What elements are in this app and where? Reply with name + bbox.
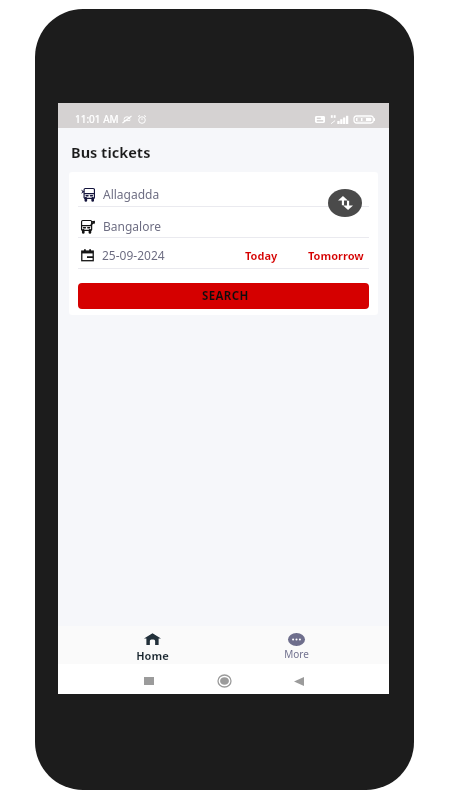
- button[interactable]: Today: [244, 248, 279, 263]
- staticText: Tomorrow: [308, 248, 364, 263]
- button[interactable]: Swap source and destination: [328, 189, 362, 217]
- staticText: Home: [136, 648, 169, 663]
- button[interactable]: Home: [213, 670, 235, 692]
- staticText: Bangalore: [103, 218, 161, 234]
- staticText: 11:01 AM: [75, 112, 119, 126]
- button[interactable]: More: [224, 626, 368, 664]
- staticText: More: [284, 647, 309, 661]
- staticText: Allagadda: [103, 186, 160, 202]
- button[interactable]: SEARCH: [78, 283, 369, 309]
- button[interactable]: Recents: [138, 670, 160, 692]
- staticText: 25-09-2024: [102, 247, 165, 263]
- staticText: Bus tickets: [71, 142, 151, 162]
- button[interactable]: Home: [81, 626, 224, 664]
- staticText: SEARCH: [202, 288, 249, 304]
- button[interactable]: Back: [288, 670, 310, 692]
- button[interactable]: From location: [69, 175, 378, 206]
- staticText: Today: [245, 248, 278, 263]
- button[interactable]: To location: [69, 207, 378, 237]
- button[interactable]: Tomorrow: [307, 248, 365, 263]
